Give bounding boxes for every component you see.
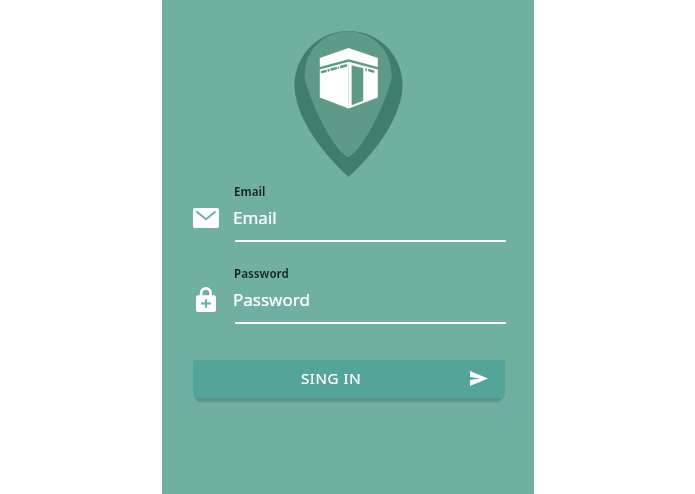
button[interactable]: Email	[233, 206, 504, 246]
staticText: Email	[234, 184, 266, 200]
staticText: SING IN	[301, 368, 362, 388]
other: Password	[196, 287, 216, 312]
staticText: Email	[233, 206, 277, 229]
button[interactable]: Password	[233, 288, 504, 328]
button[interactable]: SING IN	[193, 360, 505, 398]
staticText: Password	[233, 288, 310, 311]
staticText: Password	[234, 266, 289, 282]
other: Email	[193, 208, 219, 228]
